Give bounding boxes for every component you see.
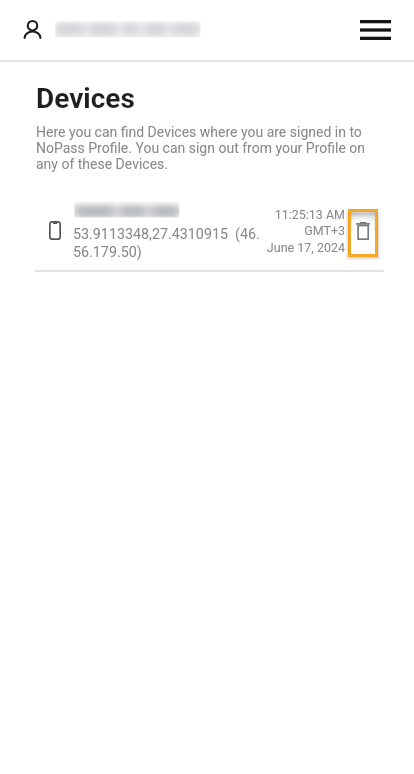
staticText: 53.9113348,27.4310915 (46. 56.179.50) [73, 226, 260, 261]
staticText: Devices [36, 82, 135, 115]
button[interactable]: Menu [352, 7, 398, 53]
button[interactable]: Delete device [351, 212, 375, 254]
staticText: 11:25:13 AM GMT+3 June 17, 2024 [225, 207, 345, 255]
button[interactable]: Account [22, 20, 42, 40]
staticText: Here you can find Devices where you are … [36, 124, 366, 172]
